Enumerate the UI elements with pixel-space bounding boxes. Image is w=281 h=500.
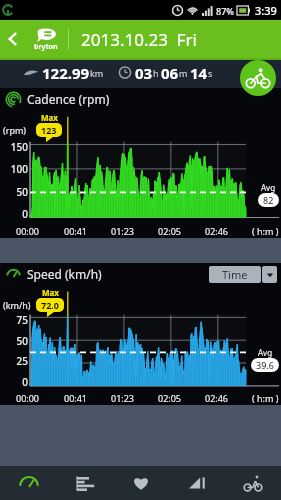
staticText: 39.6 xyxy=(256,359,274,371)
staticText: 87% xyxy=(216,5,234,17)
button[interactable]: Speed (km/h) xyxy=(6,266,102,282)
staticText: 00:00 xyxy=(16,392,40,404)
staticText: 50 xyxy=(16,185,28,199)
staticText: 00:41 xyxy=(64,392,88,404)
staticText: 00:00 xyxy=(16,225,40,237)
button[interactable]: Heart rate xyxy=(113,466,169,500)
staticText: Avg xyxy=(258,347,273,358)
staticText: 06 xyxy=(161,63,179,83)
staticText: Max xyxy=(42,287,59,298)
staticText: 02:46 xyxy=(205,392,229,404)
staticText: 03 xyxy=(135,63,153,83)
staticText: Speed (km/h) xyxy=(27,266,102,282)
staticText: 14 xyxy=(190,63,208,83)
button[interactable]: Cadence (rpm) xyxy=(6,91,110,107)
staticText: 123 xyxy=(41,124,57,136)
staticText: 02:46 xyxy=(205,225,229,237)
staticText: 50 xyxy=(16,334,28,348)
button[interactable]: Bike xyxy=(225,466,281,500)
staticText: Max xyxy=(41,112,58,123)
staticText: 0 xyxy=(22,207,28,221)
staticText: Cadence (rpm) xyxy=(27,91,110,107)
staticText: 02:05 xyxy=(158,392,182,404)
staticText: 75 xyxy=(16,313,28,327)
staticText: 82 xyxy=(263,194,274,206)
staticText: 72.0 xyxy=(41,299,59,311)
button[interactable]: Cycling activity xyxy=(240,60,276,96)
staticText: Avg xyxy=(261,182,276,193)
button[interactable]: Speed xyxy=(0,466,57,500)
staticText: 00:41 xyxy=(64,225,88,237)
staticText: Time xyxy=(222,267,248,282)
staticText: km xyxy=(90,67,104,79)
button[interactable]: Elevation xyxy=(169,466,225,500)
staticText: 01:23 xyxy=(111,225,135,237)
staticText: bryton xyxy=(34,42,58,52)
button[interactable]: Bryton xyxy=(26,22,66,56)
staticText: 02:05 xyxy=(158,225,182,237)
button[interactable]: Statistics xyxy=(57,466,113,500)
staticText: 25 xyxy=(16,354,28,368)
staticText: s xyxy=(208,67,213,79)
staticText: (rpm) xyxy=(3,124,27,136)
staticText: 122.99 xyxy=(42,63,90,83)
staticText: h xyxy=(153,67,159,79)
staticText: 150 xyxy=(10,140,28,154)
button[interactable]: Time xyxy=(209,266,277,283)
staticText: m xyxy=(179,67,188,79)
staticText: 01:23 xyxy=(111,392,135,404)
staticText: 2013.10.23 Fri xyxy=(81,28,197,51)
button[interactable]: Back xyxy=(0,26,26,52)
staticText: ( h:m ) xyxy=(252,225,279,237)
staticText: (km/h) xyxy=(3,299,31,311)
staticText: 100 xyxy=(10,162,28,176)
other: Open menu xyxy=(262,266,277,283)
staticText: ( h:m ) xyxy=(252,392,279,404)
staticText: 3:39 xyxy=(255,3,277,18)
staticText: 0 xyxy=(22,375,28,389)
